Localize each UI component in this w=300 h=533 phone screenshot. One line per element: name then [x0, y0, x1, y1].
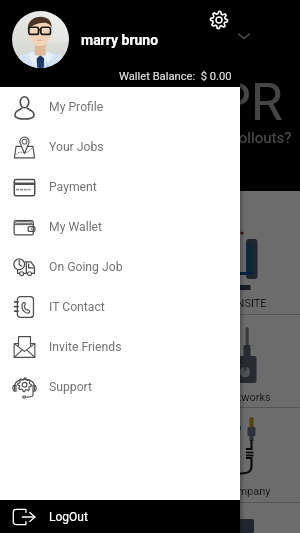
staticText: marry bruno	[81, 32, 159, 48]
button[interactable]: Settings	[209, 10, 229, 30]
staticText: LogOut	[49, 510, 88, 524]
staticText: Networks	[224, 391, 271, 404]
staticText: Support	[49, 380, 93, 394]
staticText: PR	[218, 72, 283, 133]
button[interactable]: Support	[0, 367, 240, 407]
button[interactable]: My Profile	[0, 87, 240, 127]
button[interactable]: On Going Job	[0, 247, 240, 287]
button[interactable]: Your Jobs	[0, 127, 240, 167]
staticText: Wallet Balance: $ 0.00	[119, 70, 232, 83]
staticText: My Profile	[49, 100, 104, 114]
button[interactable]: Expand account	[236, 28, 252, 44]
staticText: Company	[224, 485, 271, 498]
button[interactable]: My Wallet	[0, 207, 240, 247]
button[interactable]: Profile photo	[12, 11, 69, 68]
staticText: On Going Job	[49, 260, 123, 274]
staticText: IT Contact	[49, 300, 105, 314]
button[interactable]: IT Contact	[0, 287, 240, 327]
staticText: for Rollouts?	[207, 129, 292, 147]
staticText: Payment	[49, 180, 97, 194]
staticText: My Wallet	[49, 220, 103, 234]
staticText: Your Jobs	[49, 140, 104, 154]
button[interactable]: Invite Friends	[0, 327, 240, 367]
staticText: Invite Friends	[49, 340, 122, 354]
button[interactable]: Payment	[0, 167, 240, 207]
button[interactable]: LogOut	[0, 500, 240, 533]
staticText: ONSITE	[229, 297, 267, 310]
